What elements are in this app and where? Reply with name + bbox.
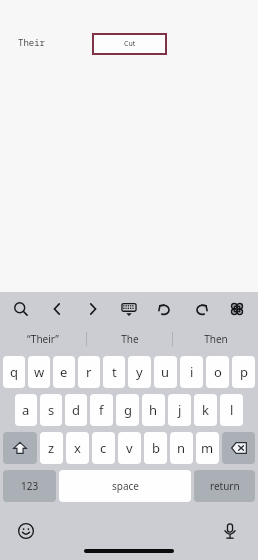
staticText: d	[72, 401, 80, 419]
button[interactable]: Redo	[186, 294, 216, 324]
staticText: o	[214, 363, 222, 381]
staticText: c	[100, 439, 107, 457]
staticText: i	[190, 363, 194, 381]
staticText: b	[152, 439, 160, 457]
staticText: f	[99, 401, 104, 419]
button[interactable]: return	[194, 470, 255, 502]
button[interactable]: q	[3, 356, 25, 388]
staticText: “Their”	[27, 332, 59, 346]
button[interactable]: d	[65, 394, 87, 426]
button[interactable]: e	[53, 356, 75, 388]
button[interactable]: j	[168, 394, 191, 426]
staticText: Their	[18, 36, 46, 48]
button[interactable]: Emoji	[14, 519, 38, 543]
staticText: q	[10, 363, 18, 381]
staticText: z	[48, 439, 55, 457]
staticText: t	[112, 363, 117, 381]
button[interactable]: u	[154, 356, 177, 388]
button[interactable]: a	[15, 394, 37, 426]
button[interactable]: w	[28, 356, 50, 388]
button[interactable]: m	[196, 432, 219, 464]
button[interactable]: b	[144, 432, 167, 464]
button[interactable]: g	[116, 394, 139, 426]
button[interactable]: Shift	[3, 432, 37, 464]
staticText: y	[136, 363, 143, 381]
button[interactable]: n	[170, 432, 193, 464]
button[interactable]: Cut	[92, 33, 167, 55]
staticText: h	[149, 401, 158, 419]
button[interactable]: t	[103, 356, 125, 388]
button[interactable]: o	[206, 356, 229, 388]
button[interactable]: v	[118, 432, 141, 464]
button[interactable]: Undo	[150, 294, 180, 324]
staticText: return	[210, 479, 240, 493]
button[interactable]: 123	[3, 470, 56, 502]
button[interactable]: s	[40, 394, 62, 426]
staticText: k	[202, 401, 209, 419]
button[interactable]: Shortcuts	[222, 294, 252, 324]
button[interactable]: y	[128, 356, 151, 388]
staticText: j	[178, 401, 182, 419]
button[interactable]: Hide keyboard	[114, 294, 144, 324]
staticText: Cut	[124, 39, 136, 49]
staticText: n	[177, 439, 186, 457]
button[interactable]: i	[180, 356, 203, 388]
button[interactable]: Search	[6, 294, 36, 324]
staticText: p	[240, 363, 248, 381]
staticText: v	[126, 439, 133, 457]
button[interactable]: h	[142, 394, 165, 426]
staticText: x	[74, 439, 81, 457]
button[interactable]: Dictate	[218, 519, 242, 543]
button[interactable]: p	[232, 356, 255, 388]
button[interactable]: x	[66, 432, 89, 464]
staticText: w	[34, 363, 45, 381]
button[interactable]: f	[90, 394, 113, 426]
staticText: The	[121, 332, 139, 346]
button[interactable]: k	[194, 394, 217, 426]
staticText: space	[112, 479, 139, 493]
button[interactable]: r	[78, 356, 100, 388]
button[interactable]: “Their”	[0, 326, 86, 352]
staticText: l	[230, 401, 234, 419]
staticText: a	[22, 401, 30, 419]
button[interactable]: The	[87, 326, 172, 352]
staticText: r	[86, 363, 92, 381]
staticText: g	[124, 401, 132, 419]
button[interactable]: c	[92, 432, 115, 464]
staticText: u	[161, 363, 170, 381]
staticText: Then	[204, 332, 228, 346]
button[interactable]: Next	[78, 294, 108, 324]
button[interactable]: Then	[173, 326, 258, 352]
button[interactable]: l	[220, 394, 243, 426]
staticText: e	[60, 363, 68, 381]
button[interactable]: Backspace	[222, 432, 255, 464]
staticText: 123	[21, 479, 39, 493]
staticText: s	[48, 401, 55, 419]
staticText: m	[201, 439, 214, 457]
button[interactable]: z	[40, 432, 63, 464]
button[interactable]: Previous	[42, 294, 72, 324]
button[interactable]: space	[59, 470, 191, 502]
